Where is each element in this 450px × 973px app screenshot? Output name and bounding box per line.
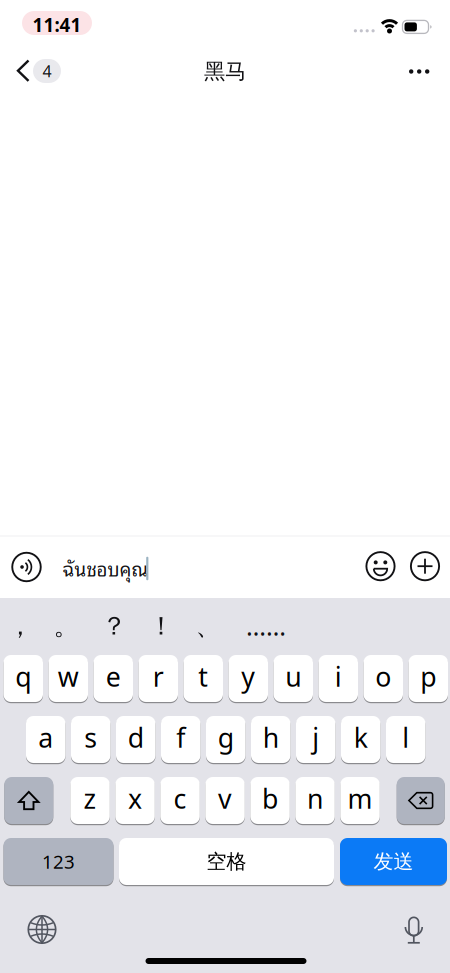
staticText: o xyxy=(375,659,391,694)
button[interactable]: u xyxy=(273,655,313,702)
staticText: r xyxy=(153,659,164,694)
button[interactable]: 、 xyxy=(188,604,228,648)
button[interactable]: h xyxy=(251,716,290,763)
button[interactable] xyxy=(4,777,53,824)
staticText: ？ xyxy=(101,610,126,641)
button[interactable]: z xyxy=(70,777,110,824)
button[interactable]: i xyxy=(318,655,358,702)
staticText: ， xyxy=(7,610,32,641)
staticText: u xyxy=(285,659,301,694)
button[interactable] xyxy=(397,777,445,824)
staticText: 。 xyxy=(53,610,78,641)
button[interactable]: w xyxy=(48,655,88,702)
staticText: m xyxy=(348,781,373,816)
staticText: n xyxy=(307,781,323,816)
staticText: j xyxy=(312,720,319,755)
staticText: h xyxy=(263,720,279,755)
button[interactable]: m xyxy=(340,777,380,824)
staticText: z xyxy=(83,781,96,816)
staticText: x xyxy=(128,781,142,816)
button[interactable] xyxy=(411,552,439,580)
staticText: s xyxy=(84,720,97,755)
button[interactable]: e xyxy=(93,655,133,702)
button[interactable]: y xyxy=(228,655,268,702)
staticText: 黑马 xyxy=(204,58,246,85)
staticText: b xyxy=(262,781,278,816)
button[interactable] xyxy=(401,917,427,944)
staticText: e xyxy=(106,659,121,694)
button[interactable]: ！ xyxy=(141,604,181,648)
button[interactable]: ฉันชอบคุณ xyxy=(50,538,360,594)
staticText: 空格 xyxy=(206,849,246,874)
staticText: 4 xyxy=(42,60,51,82)
staticText: y xyxy=(241,659,255,694)
staticText: g xyxy=(218,720,234,755)
button[interactable]: s xyxy=(71,716,110,763)
staticText: 11:41 xyxy=(32,12,81,37)
button[interactable]: f xyxy=(161,716,200,763)
button[interactable]: r xyxy=(138,655,178,702)
button[interactable]: v xyxy=(205,777,245,824)
staticText: l xyxy=(402,720,409,755)
button[interactable]: ， xyxy=(0,604,40,648)
button[interactable] xyxy=(408,60,430,82)
staticText: k xyxy=(354,720,368,755)
staticText: c xyxy=(174,781,187,816)
staticText: d xyxy=(128,720,144,755)
button[interactable]: x xyxy=(115,777,155,824)
button[interactable]: 。 xyxy=(46,604,86,648)
staticText: w xyxy=(58,659,79,694)
button[interactable]: ？ xyxy=(94,604,134,648)
staticText: i xyxy=(335,659,342,694)
button[interactable]: q xyxy=(3,655,43,702)
button[interactable]: t xyxy=(183,655,223,702)
button[interactable]: g xyxy=(206,716,245,763)
button[interactable]: p xyxy=(408,655,448,702)
button[interactable]: 4 xyxy=(16,59,62,83)
button[interactable]: 123 xyxy=(3,838,113,885)
button[interactable] xyxy=(366,552,395,580)
button[interactable]: a xyxy=(26,716,65,763)
button[interactable]: j xyxy=(296,716,335,763)
button[interactable]: l xyxy=(386,716,425,763)
button[interactable] xyxy=(28,916,56,943)
button[interactable]: o xyxy=(363,655,403,702)
button[interactable]: k xyxy=(341,716,380,763)
staticText: f xyxy=(176,720,185,755)
button[interactable]: …… xyxy=(238,604,294,648)
staticText: …… xyxy=(246,609,286,643)
button[interactable]: b xyxy=(250,777,290,824)
staticText: 、 xyxy=(195,610,220,641)
staticText: a xyxy=(38,720,53,755)
button[interactable]: d xyxy=(116,716,155,763)
button[interactable]: n xyxy=(295,777,335,824)
staticText: 123 xyxy=(42,849,75,874)
staticText: t xyxy=(198,659,208,694)
staticText: p xyxy=(420,659,436,694)
staticText: q xyxy=(15,659,31,694)
button[interactable]: 发送 xyxy=(340,838,447,885)
button[interactable] xyxy=(12,553,41,581)
staticText: v xyxy=(218,781,232,816)
button[interactable]: c xyxy=(160,777,200,824)
staticText: ！ xyxy=(148,610,173,641)
staticText: 发送 xyxy=(373,849,413,874)
button[interactable]: 空格 xyxy=(119,838,334,885)
staticText: ฉันชอบคุณ xyxy=(62,553,147,583)
